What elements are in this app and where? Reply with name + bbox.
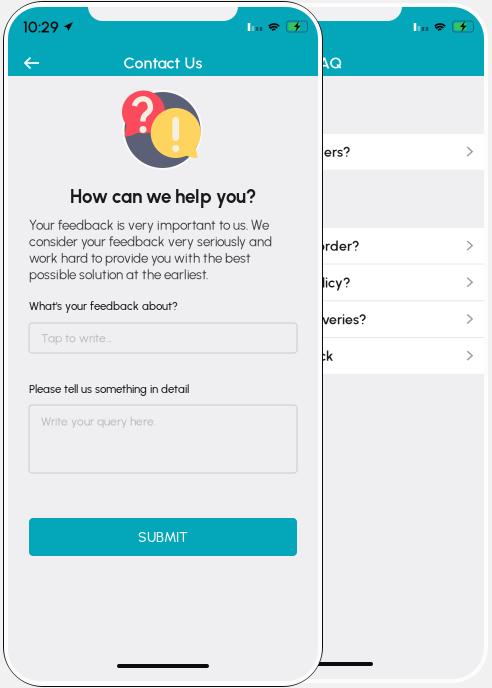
staticText: 10:29: [23, 17, 59, 37]
button[interactable]: How do I track my orders?: [170, 134, 484, 170]
staticText: How do I give feedback: [186, 348, 333, 364]
button[interactable]: Do you charge for deliveries?: [170, 301, 484, 337]
staticText: How do I track my orders?: [186, 143, 350, 160]
staticText: What is your return policy?: [186, 274, 350, 291]
staticText: How can we help you?: [70, 185, 256, 208]
staticText: Write your query here.: [41, 414, 156, 428]
staticText: Tap to write...: [41, 331, 112, 345]
staticText: Do you charge for deliveries?: [186, 311, 366, 328]
button[interactable]: Write your query here.: [29, 405, 297, 473]
staticText: consider your feedback very seriously an…: [29, 233, 272, 249]
staticText: SUBMIT: [138, 529, 188, 545]
button[interactable]: How can I cancel my order?: [170, 228, 484, 264]
staticText: FAQ: [311, 53, 342, 73]
staticText: Please tell us something in detail: [29, 382, 189, 396]
button[interactable]: Tap to write...: [29, 323, 297, 353]
button[interactable]: SUBMIT: [29, 518, 297, 556]
staticText: How can I cancel my order?: [186, 237, 359, 254]
button[interactable]: What is your return policy?: [170, 265, 484, 300]
staticText: possible solution at the earliest.: [29, 266, 208, 282]
button[interactable]: Back: [21, 52, 45, 74]
button[interactable]: How do I give feedback: [170, 338, 484, 374]
staticText: Contact Us: [123, 53, 202, 73]
staticText: What's your feedback about?: [29, 299, 178, 313]
staticText: work hard to provide you with the best: [29, 250, 251, 266]
staticText: Your feedback is very important to us. W…: [29, 217, 269, 233]
